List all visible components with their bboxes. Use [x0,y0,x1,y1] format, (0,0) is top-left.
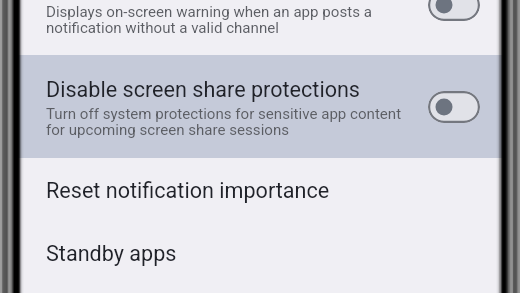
button[interactable]: Toggle setting [428,91,480,123]
button[interactable]: Displays on-screen warning when an app p… [0,0,520,55]
staticText: Standby apps [46,241,177,266]
button[interactable]: Reset notification importance [0,158,520,220]
staticText: Displays on-screen warning when an app p… [46,3,372,36]
button[interactable]: Toggle setting [428,0,480,21]
staticText: Reset notification importance [46,178,330,203]
button[interactable]: Standby apps [0,220,520,282]
staticText: Turn off system protections for sensitiv… [46,105,402,138]
button[interactable]: Disable screen share protections [0,55,520,158]
staticText: Disable screen share protections [46,77,361,102]
